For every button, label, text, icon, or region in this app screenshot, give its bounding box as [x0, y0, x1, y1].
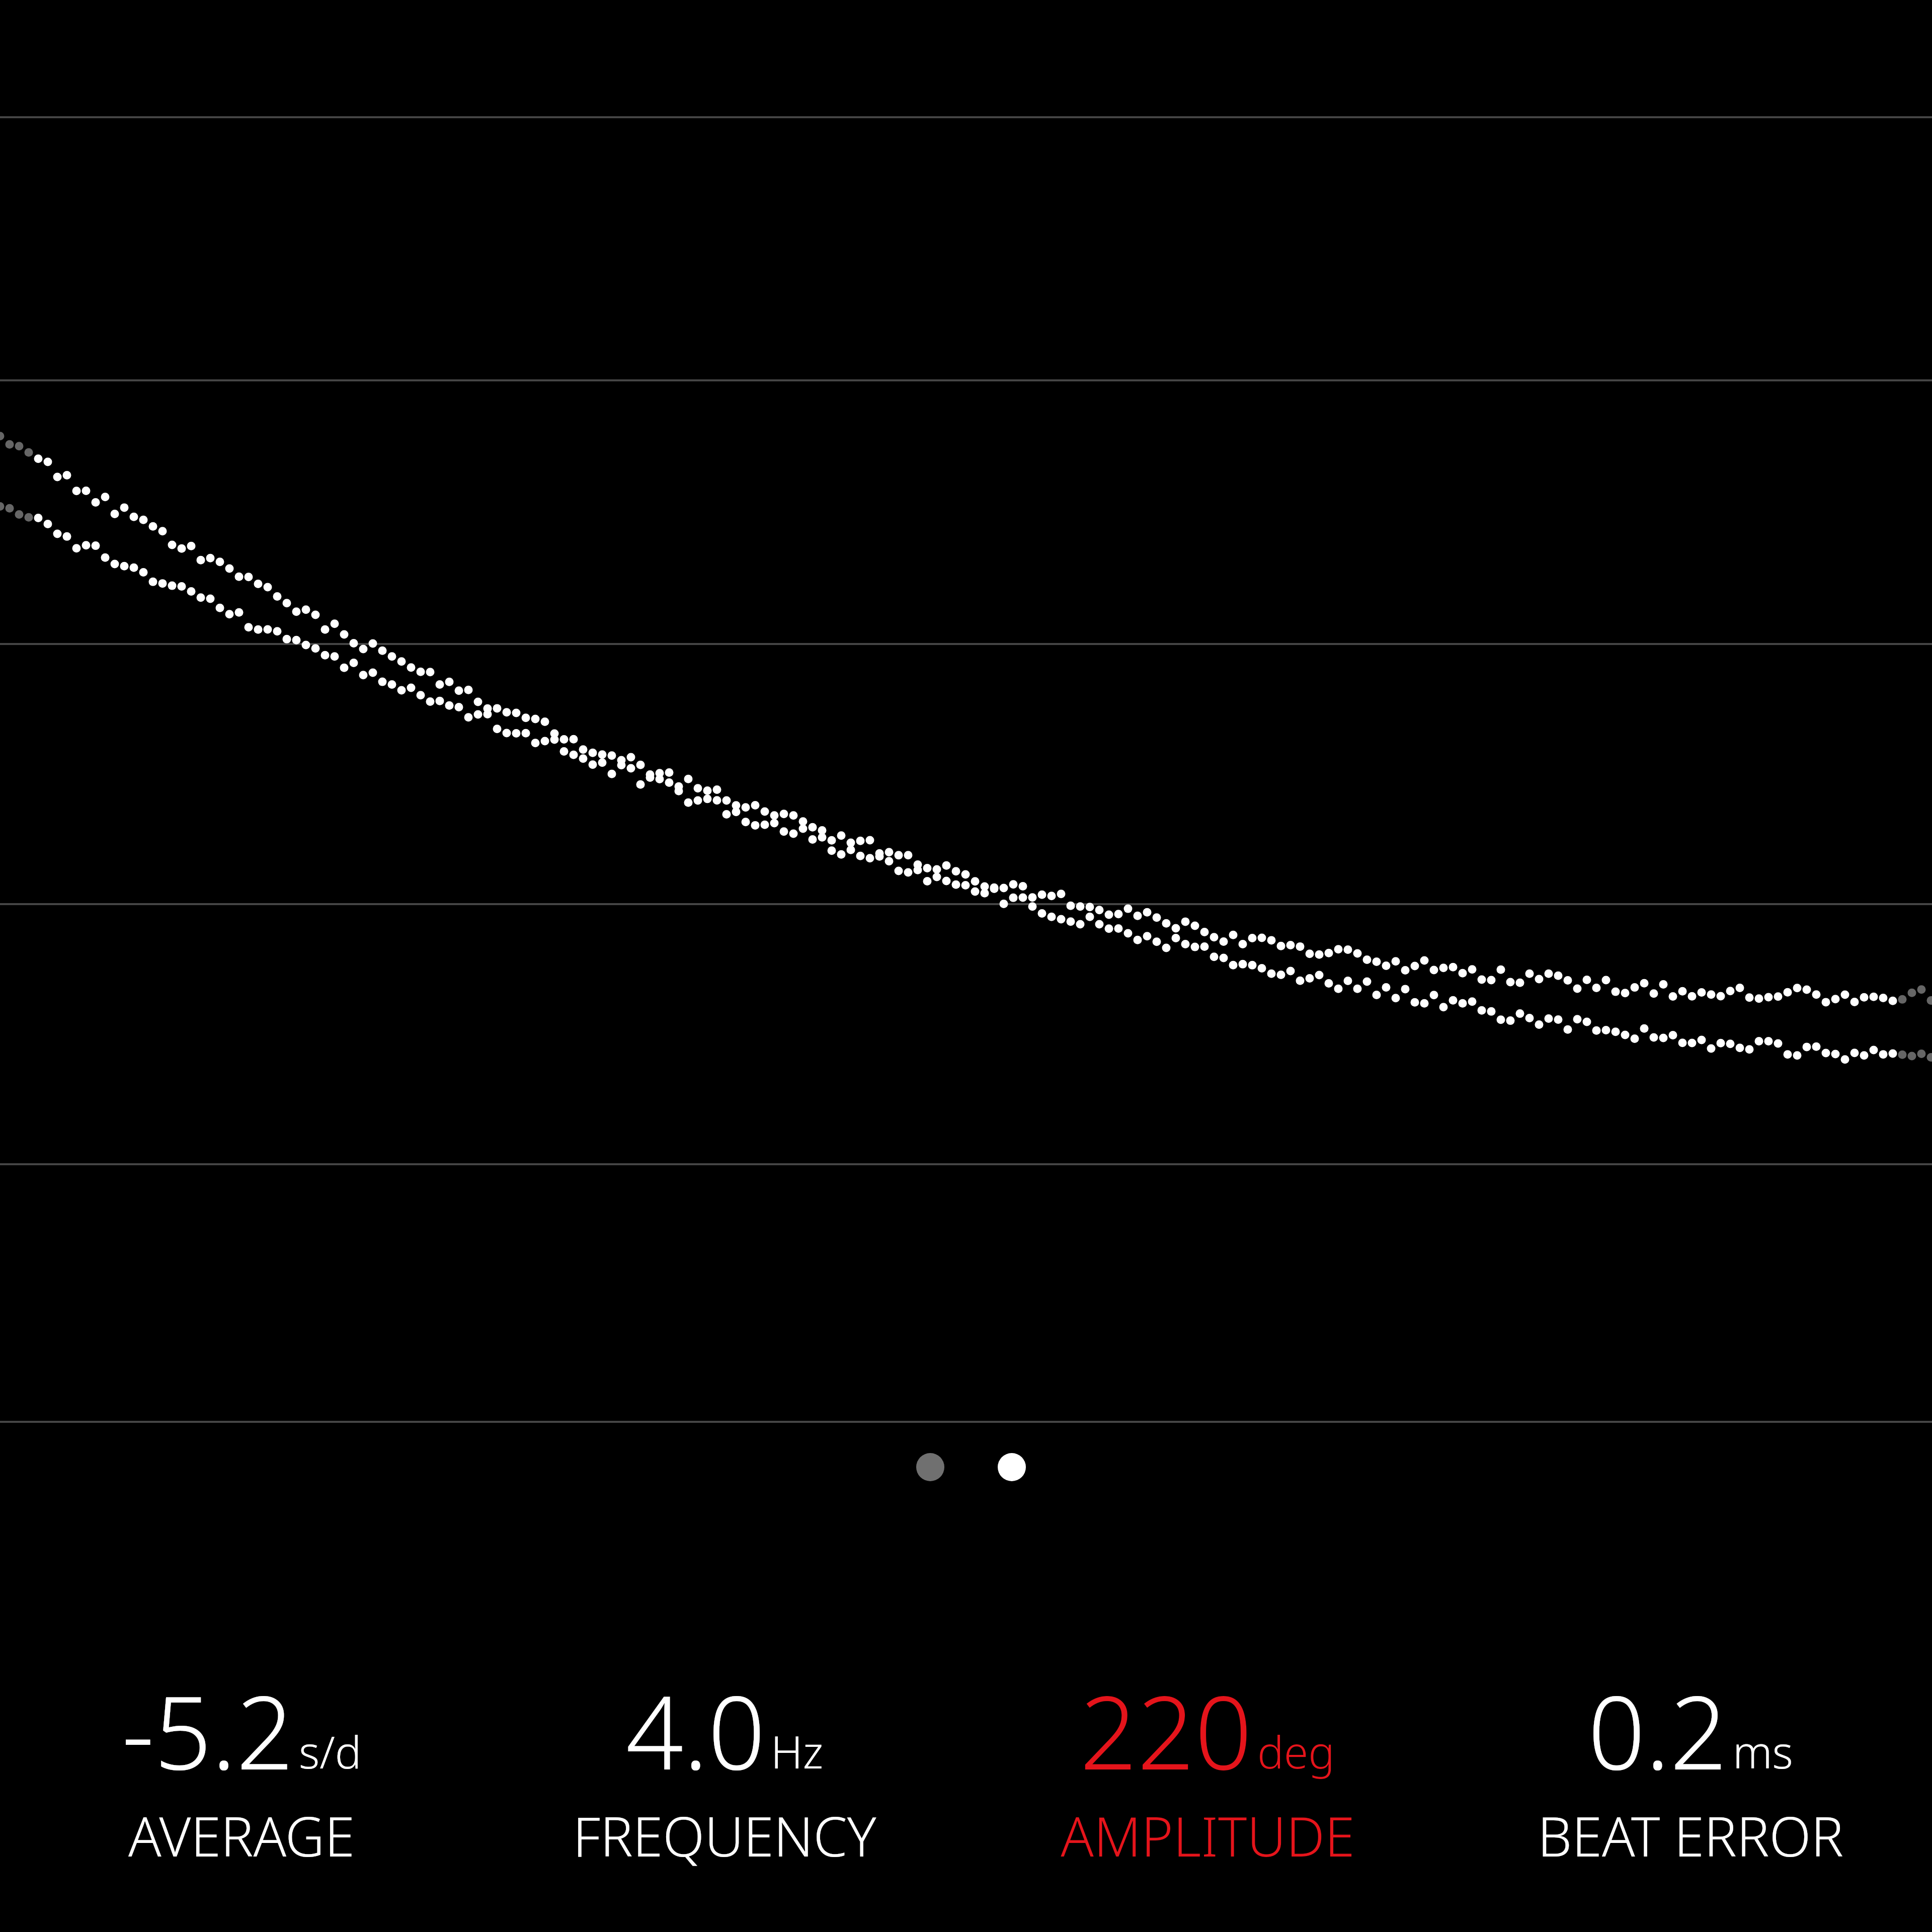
staticText: FREQUENCY	[573, 1799, 876, 1873]
button[interactable]: 220	[966, 1662, 1449, 1873]
staticText: AVERAGE	[128, 1799, 355, 1873]
button[interactable]: Page 1	[916, 1453, 944, 1481]
button[interactable]: Page 2	[998, 1453, 1026, 1481]
staticText: Hz	[771, 1721, 824, 1782]
staticText: ms	[1733, 1721, 1793, 1782]
staticText: BEAT ERROR	[1538, 1799, 1843, 1873]
staticText: 4.0	[626, 1662, 766, 1799]
button[interactable]: 4.0	[483, 1662, 966, 1873]
staticText: deg	[1257, 1721, 1335, 1782]
staticText: 220	[1080, 1662, 1252, 1799]
button[interactable]: 0.2	[1449, 1662, 1932, 1873]
staticText: AMPLITUDE	[1061, 1799, 1355, 1873]
staticText: -5.2	[122, 1662, 294, 1799]
staticText: 0.2	[1588, 1662, 1728, 1799]
button[interactable]: -5.2	[0, 1662, 483, 1873]
staticText: s/d	[299, 1721, 362, 1782]
